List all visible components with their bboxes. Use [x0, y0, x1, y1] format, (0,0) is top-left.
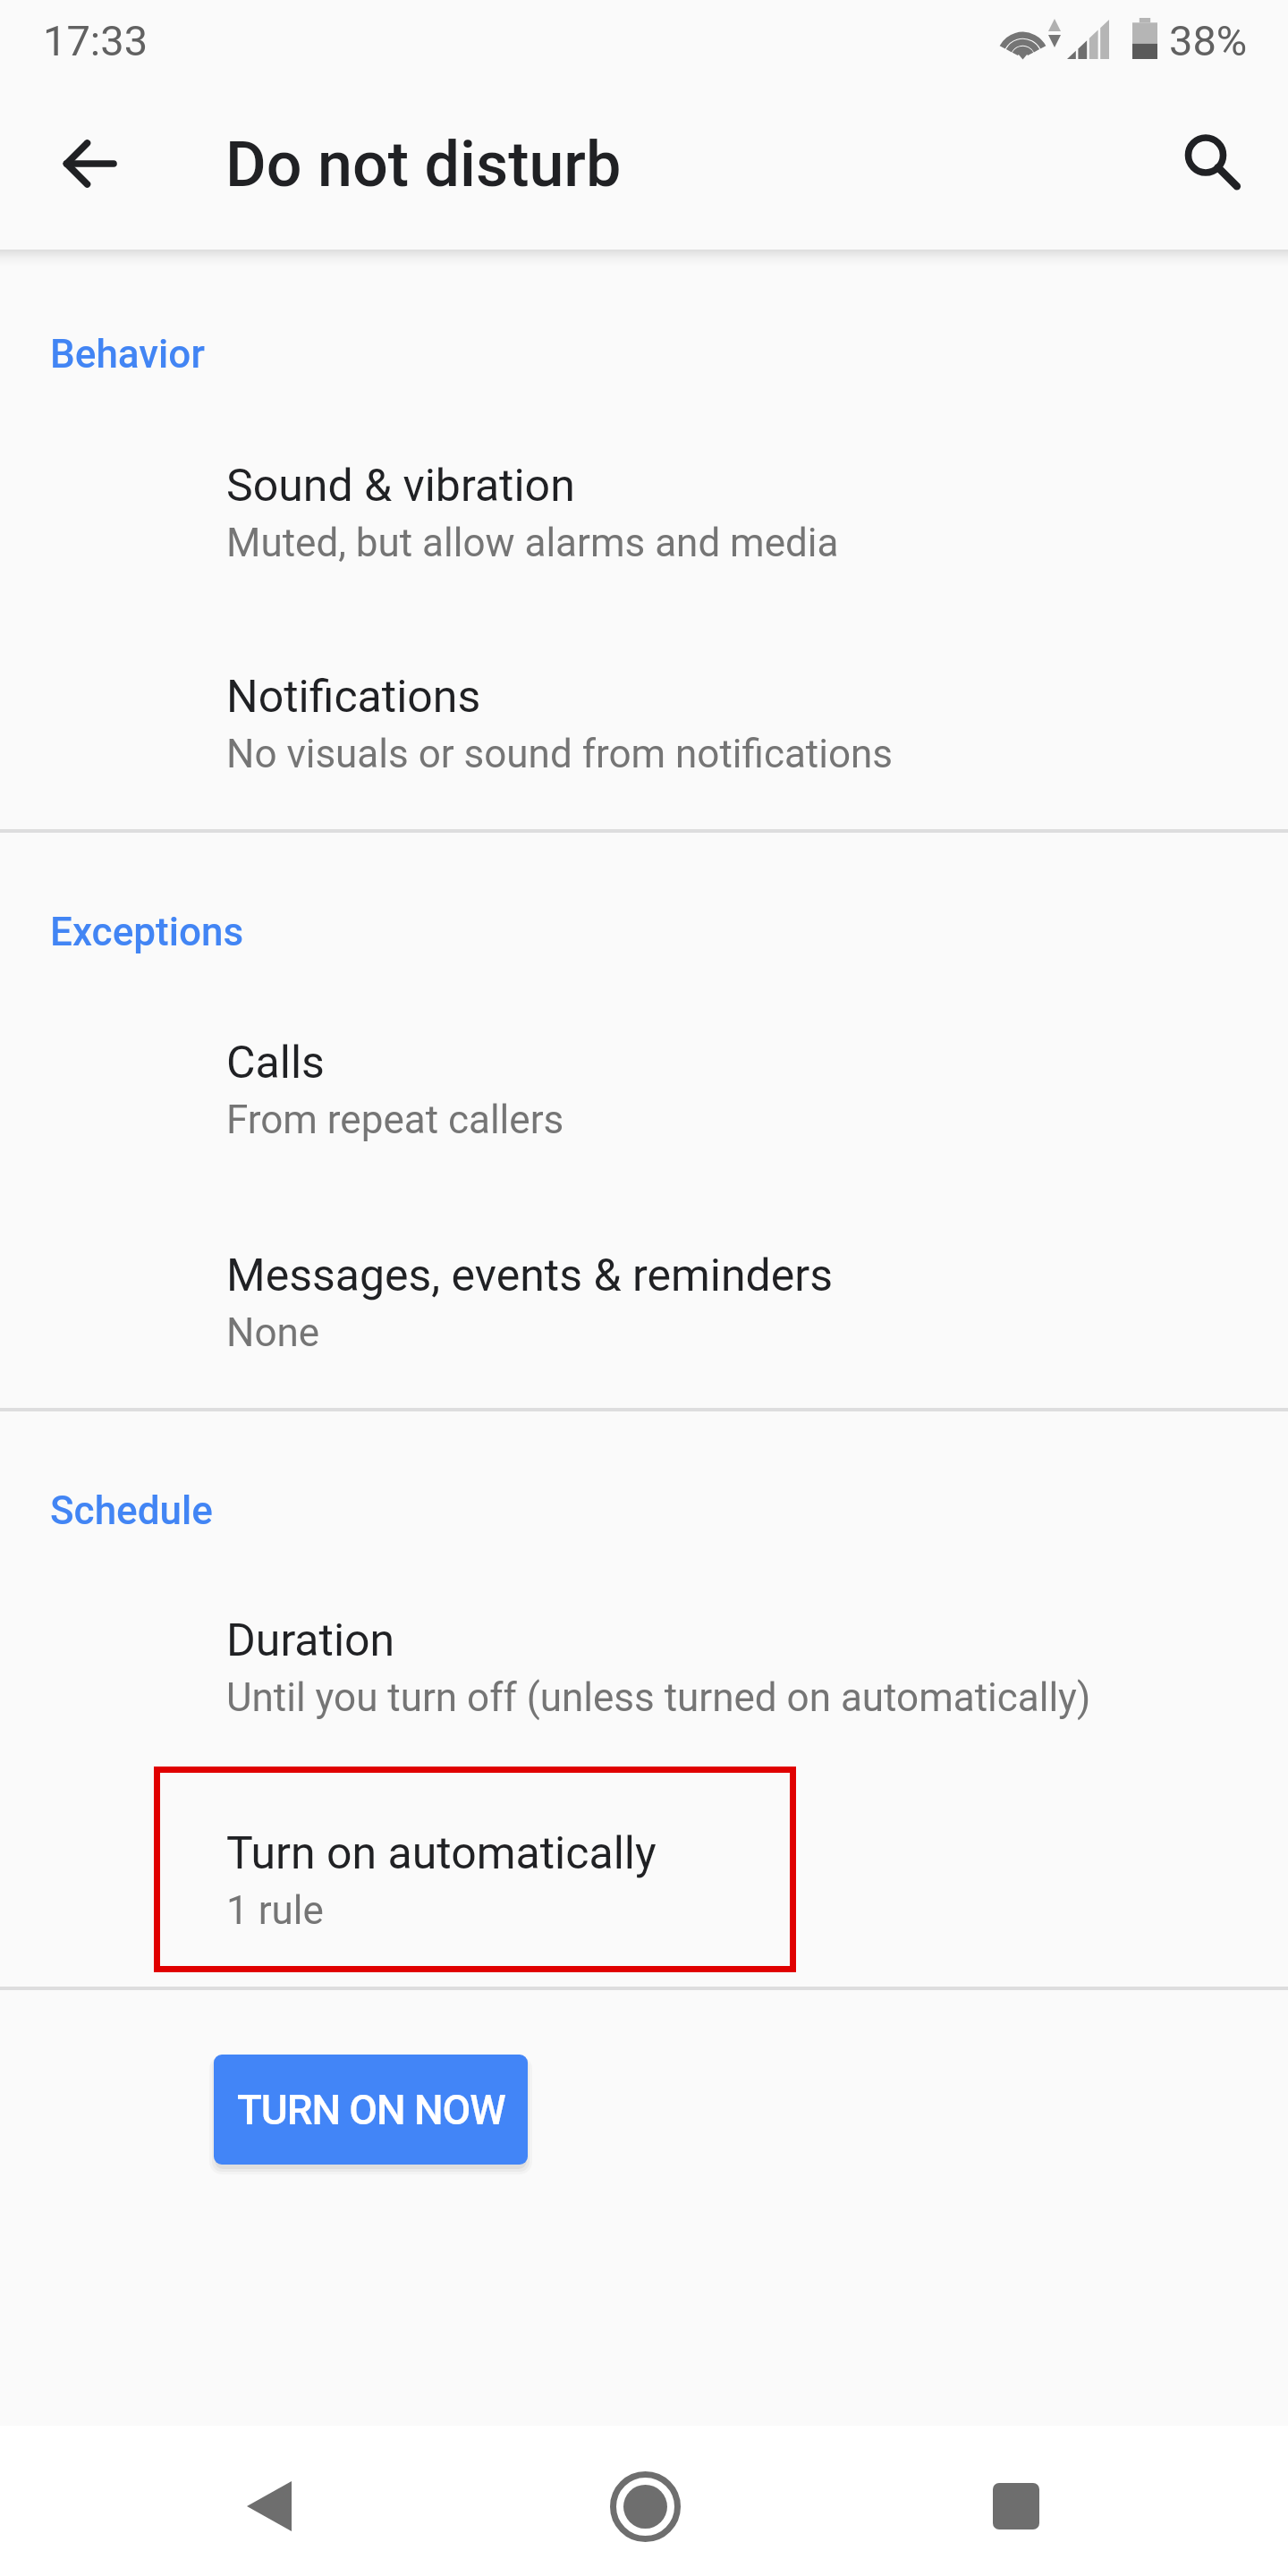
staticText: 17:33	[43, 16, 148, 65]
button[interactable]: Notifications	[0, 617, 1288, 830]
button[interactable]: Sound & vibration	[0, 406, 1288, 619]
button[interactable]: Calls	[0, 983, 1288, 1196]
button[interactable]: Search	[1165, 114, 1265, 215]
button[interactable]: TURN ON NOW	[214, 2055, 528, 2165]
staticText: Messages, events & reminders	[226, 1250, 833, 1302]
button[interactable]: Messages, events & reminders	[0, 1196, 1288, 1409]
staticText: Sound & vibration	[226, 460, 575, 513]
staticText: TURN ON NOW	[237, 2086, 505, 2134]
button[interactable]: Back	[162, 2439, 377, 2573]
staticText: Calls	[226, 1037, 325, 1089]
staticText: Until you turn off (unless turned on aut…	[226, 1674, 1091, 1721]
staticText: 38%	[1169, 16, 1248, 65]
button[interactable]: Navigate up	[39, 114, 140, 214]
staticText: Do not disturb	[225, 128, 622, 201]
staticText: No visuals or sound from notifications	[226, 731, 894, 777]
staticText: Turn on automatically	[226, 1827, 657, 1880]
staticText: Exceptions	[50, 909, 244, 955]
button[interactable]: Recent apps	[909, 2439, 1123, 2573]
staticText: Muted, but allow alarms and media	[226, 520, 839, 566]
staticText: 1 rule	[226, 1887, 324, 1934]
button[interactable]: Home	[538, 2439, 752, 2573]
staticText: Schedule	[50, 1487, 213, 1534]
staticText: From repeat callers	[226, 1097, 564, 1143]
button[interactable]: Turn on automatically	[0, 1774, 1288, 1987]
staticText: Notifications	[226, 671, 481, 724]
staticText: None	[226, 1309, 320, 1356]
button[interactable]: Duration	[0, 1561, 1288, 1774]
staticText: Duration	[226, 1614, 395, 1667]
staticText: Behavior	[50, 331, 205, 377]
